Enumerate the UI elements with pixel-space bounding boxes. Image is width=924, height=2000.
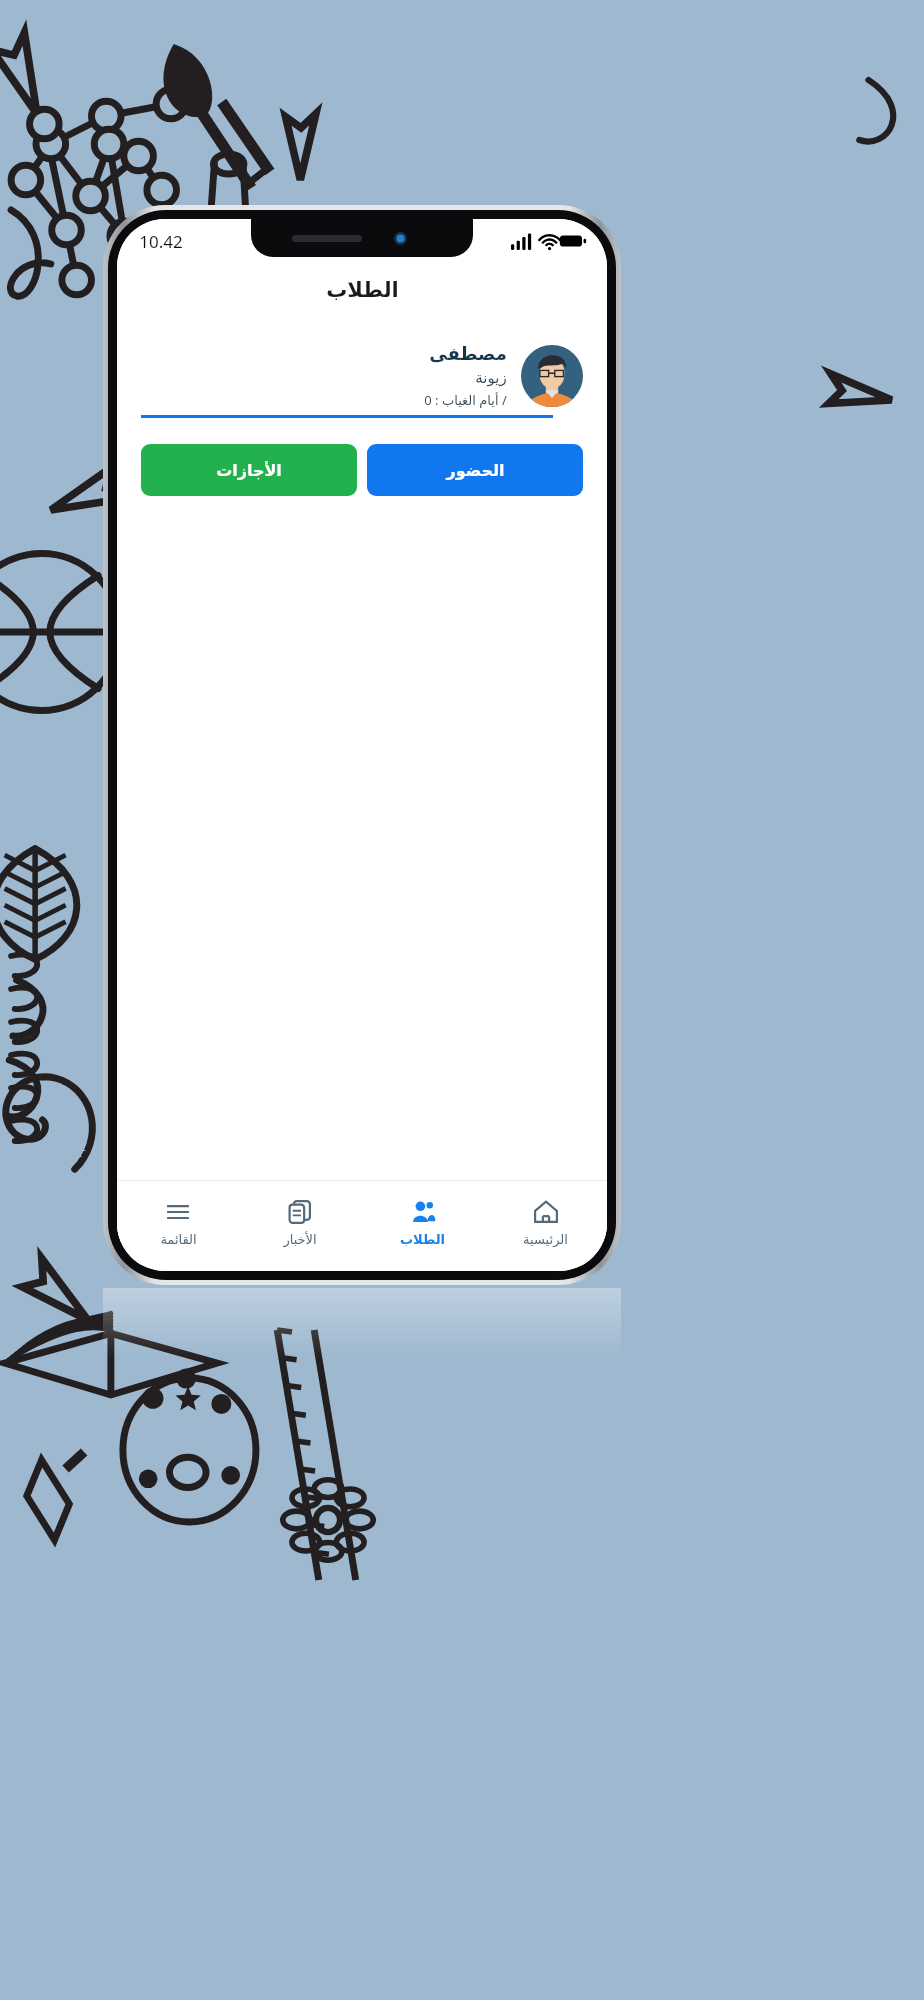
staticText: الرئيسية bbox=[523, 1232, 568, 1247]
button[interactable]: Menu bbox=[117, 1181, 239, 1265]
staticText: الأجازات bbox=[216, 461, 282, 480]
other: Students bbox=[410, 1199, 436, 1225]
other: Menu bbox=[165, 1199, 191, 1225]
staticText: مصطفى bbox=[429, 343, 507, 364]
button[interactable]: الحضور bbox=[367, 444, 583, 496]
staticText: 10.42 bbox=[139, 230, 183, 253]
button[interactable]: الأجازات bbox=[141, 444, 357, 496]
button[interactable]: News bbox=[239, 1181, 361, 1265]
other: Home bbox=[533, 1199, 559, 1225]
staticText: الطلاب bbox=[326, 278, 399, 302]
staticText: الأخبار bbox=[283, 1232, 317, 1247]
staticText: القائمة bbox=[160, 1232, 197, 1247]
staticText: الطلاب bbox=[400, 1232, 445, 1247]
button[interactable]: Students bbox=[361, 1181, 484, 1265]
staticText: زيونة bbox=[475, 369, 507, 386]
staticText: الحضور bbox=[446, 461, 505, 480]
other: News bbox=[287, 1199, 313, 1225]
staticText: أيام الغياب : 0 / bbox=[424, 391, 507, 409]
button[interactable]: Home bbox=[484, 1181, 607, 1265]
button[interactable]: مصطفى bbox=[127, 331, 597, 508]
